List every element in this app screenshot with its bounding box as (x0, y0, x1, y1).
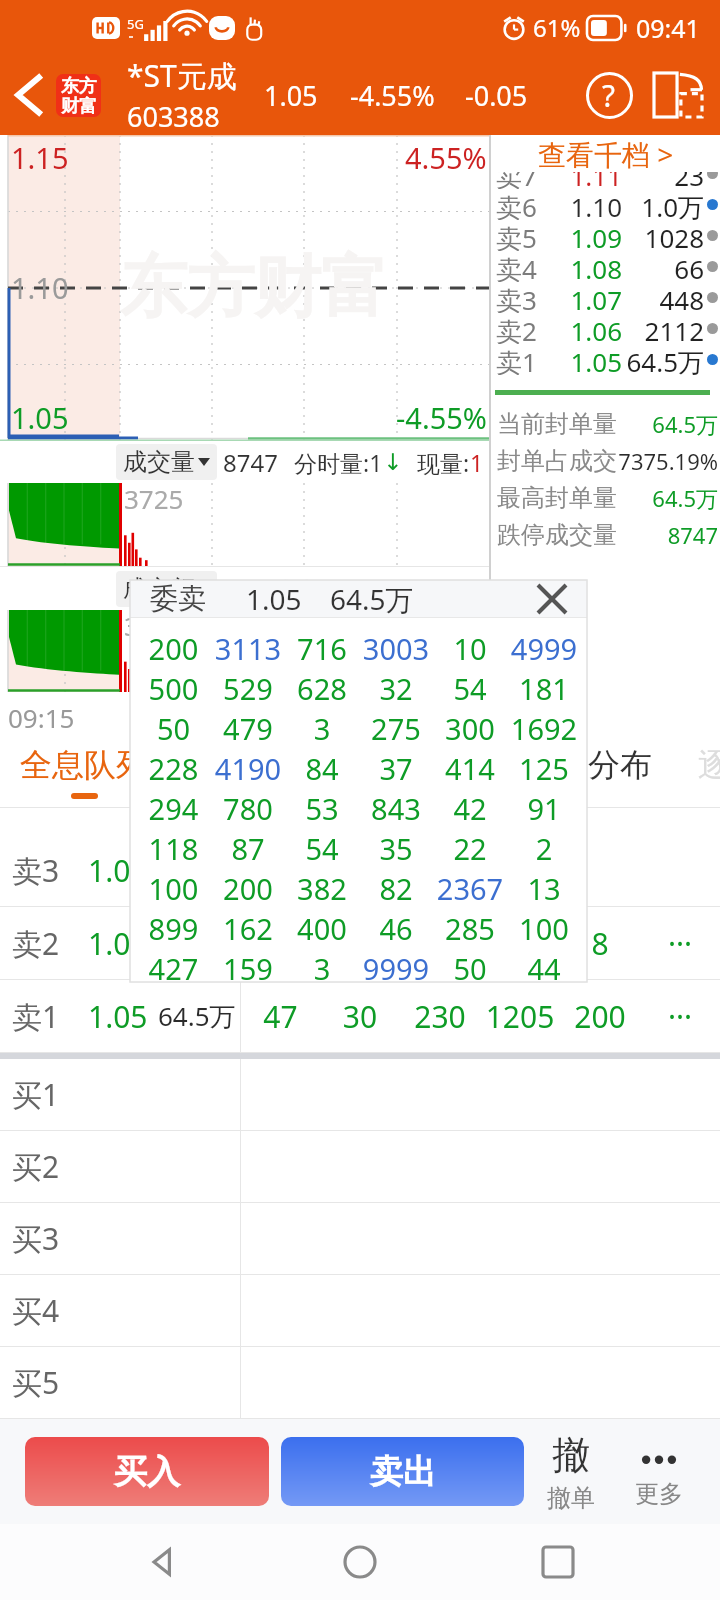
staticText: 382 (285, 869, 359, 908)
button[interactable]: Home (325, 1527, 395, 1597)
button[interactable]: 撤 (528, 1419, 614, 1524)
button[interactable]: 卖1 (496, 344, 718, 375)
staticText: 427 (136, 949, 211, 988)
staticText: 卖3 (12, 850, 60, 891)
staticText: 卖1 (496, 344, 537, 375)
staticText: 买4 (12, 1290, 60, 1331)
staticText: 159 (211, 949, 285, 988)
staticText: 当前封单量 (497, 409, 617, 439)
button[interactable]: 卖6 (496, 189, 718, 220)
staticText: 50 (433, 949, 507, 988)
staticText: 最高封单量 (497, 483, 617, 513)
staticText: 3 (285, 949, 359, 988)
staticText: 卖4 (496, 251, 537, 282)
staticText: ··· (640, 923, 720, 964)
button[interactable]: 卖7 (496, 172, 718, 189)
staticText: 东方财富 (120, 245, 388, 329)
staticText: 4.55% (405, 138, 487, 177)
staticText: 66 (622, 251, 704, 282)
staticText: 228 (136, 749, 211, 788)
button[interactable]: 全息队列 (0, 737, 168, 807)
staticText: 1 (470, 447, 484, 478)
staticText (480, 923, 560, 964)
staticText: 23 (622, 172, 704, 189)
staticText: 买1 (12, 1074, 60, 1115)
staticText: 53 (285, 789, 359, 828)
staticText: 82 (359, 869, 433, 908)
staticText: 628 (285, 669, 359, 708)
staticText: 买3 (12, 1218, 60, 1259)
staticText (320, 923, 400, 964)
staticText: 13 (507, 869, 581, 908)
staticText: 35 (359, 829, 433, 868)
staticText: 200 (136, 629, 211, 668)
staticText: 4190 (211, 749, 285, 788)
staticText: 封单占成交 (497, 446, 617, 476)
staticText: 更多 (635, 1479, 683, 1509)
staticText: 448 (622, 282, 704, 313)
staticText: 64.5万 (622, 344, 704, 375)
staticText: 分时量:1 (294, 447, 383, 478)
staticText: 撤单 (547, 1483, 595, 1513)
button[interactable]: Back (0, 55, 56, 135)
staticText: 1.10 (537, 189, 622, 220)
staticText: 7375.19% (617, 446, 718, 476)
staticText: 500 (136, 669, 211, 708)
staticText: -4.55% (396, 398, 487, 437)
staticText: 1.08 (537, 251, 622, 282)
staticText: 42 (433, 789, 507, 828)
staticText: 200 (211, 869, 285, 908)
staticText (241, 923, 320, 964)
staticText: 卖2 (12, 923, 60, 964)
button[interactable]: 成交额 (123, 574, 210, 604)
staticText: 全息队列 (20, 745, 148, 785)
button[interactable]: 卖5 (496, 220, 718, 251)
staticText: 54 (285, 829, 359, 868)
staticText: 91 (507, 789, 581, 828)
staticText: 2112 (158, 926, 218, 961)
staticText: 1.06 (537, 313, 622, 344)
button[interactable]: 分布 (536, 737, 704, 807)
button[interactable]: 卖4 (496, 251, 718, 282)
staticText: 1.05 (88, 996, 148, 1037)
button[interactable]: More (616, 1419, 702, 1524)
staticText: 0 (130, 700, 145, 735)
staticText: 卖出 (370, 1451, 436, 1493)
staticText: 2367 (433, 869, 507, 908)
staticText: 跌停成交量 (497, 520, 617, 550)
staticText: 300 (433, 709, 507, 748)
button[interactable]: 逐笔 (646, 737, 720, 807)
button[interactable]: 查看千档 > (491, 135, 720, 172)
staticText: 成交额 (123, 574, 195, 604)
staticText: ↓ (383, 449, 403, 476)
staticText: 1.15 (11, 138, 69, 177)
staticText: 8747 (223, 446, 278, 479)
staticText: 东方 财富 (61, 75, 97, 117)
staticText: 买2 (12, 1146, 60, 1187)
button[interactable]: 卖2 (496, 313, 718, 344)
staticText: 逐笔 (698, 745, 720, 785)
staticText: 1.09 (537, 220, 622, 251)
staticText: 1692 (507, 709, 581, 748)
button[interactable]: Close (531, 580, 573, 617)
button[interactable]: 东方 财富 (56, 74, 101, 117)
staticText: 撤 (552, 1431, 590, 1479)
button[interactable]: 成交量 (123, 447, 210, 477)
staticText: 成交量 (123, 447, 195, 477)
staticText: 3003 (359, 629, 433, 668)
staticText: 2112 (622, 313, 704, 344)
staticText: 1.11 (537, 172, 622, 189)
button[interactable]: Back (128, 1527, 198, 1597)
staticText: 32 (359, 669, 433, 708)
button[interactable]: 卖3 (496, 282, 718, 313)
button[interactable]: 卖出 (281, 1437, 524, 1506)
button[interactable]: Add to watchlist (644, 55, 712, 135)
button[interactable]: Recents (523, 1527, 593, 1597)
button[interactable]: 买入 (25, 1437, 269, 1506)
button[interactable]: Help (576, 55, 642, 135)
staticText: 3 (285, 709, 359, 748)
staticText: 400 (285, 909, 359, 948)
staticText: 275 (359, 709, 433, 748)
staticText: 285 (433, 909, 507, 948)
staticText: 54 (433, 669, 507, 708)
